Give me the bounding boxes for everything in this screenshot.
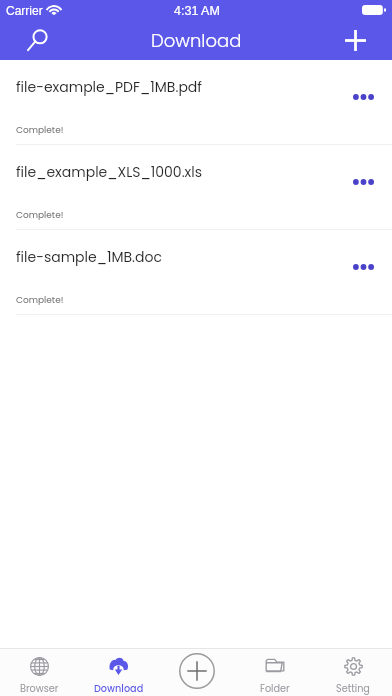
button[interactable]: More options [343,247,383,287]
button[interactable]: Browser [0,649,79,696]
button[interactable]: Folder [236,649,314,696]
staticText: Folder [260,682,290,696]
staticText: Complete! [16,124,64,137]
button[interactable]: file-sample_1MB.doc [0,230,392,315]
button[interactable]: More options [343,77,383,117]
staticText: Complete! [16,294,64,307]
staticText: Download [151,28,242,53]
staticText: file_example_XLS_1000.xls [16,162,203,182]
staticText: Download [94,682,144,696]
button[interactable]: Download [79,649,158,696]
button[interactable]: Add [338,23,372,57]
button[interactable]: file-example_PDF_1MB.pdf [0,60,392,145]
staticText: Complete! [16,209,64,222]
staticText: Browser [20,682,59,696]
button[interactable]: More options [343,162,383,202]
staticText: Setting [336,682,370,696]
staticText: file-sample_1MB.doc [16,247,162,267]
button[interactable]: file_example_XLS_1000.xls [0,145,392,230]
staticText: Carrier [6,4,43,17]
staticText: file-example_PDF_1MB.pdf [16,77,202,97]
button[interactable]: Setting [314,649,392,696]
staticText: 4:31 AM [174,4,220,18]
button[interactable]: Search [22,24,54,56]
button[interactable]: Add download [158,649,236,696]
